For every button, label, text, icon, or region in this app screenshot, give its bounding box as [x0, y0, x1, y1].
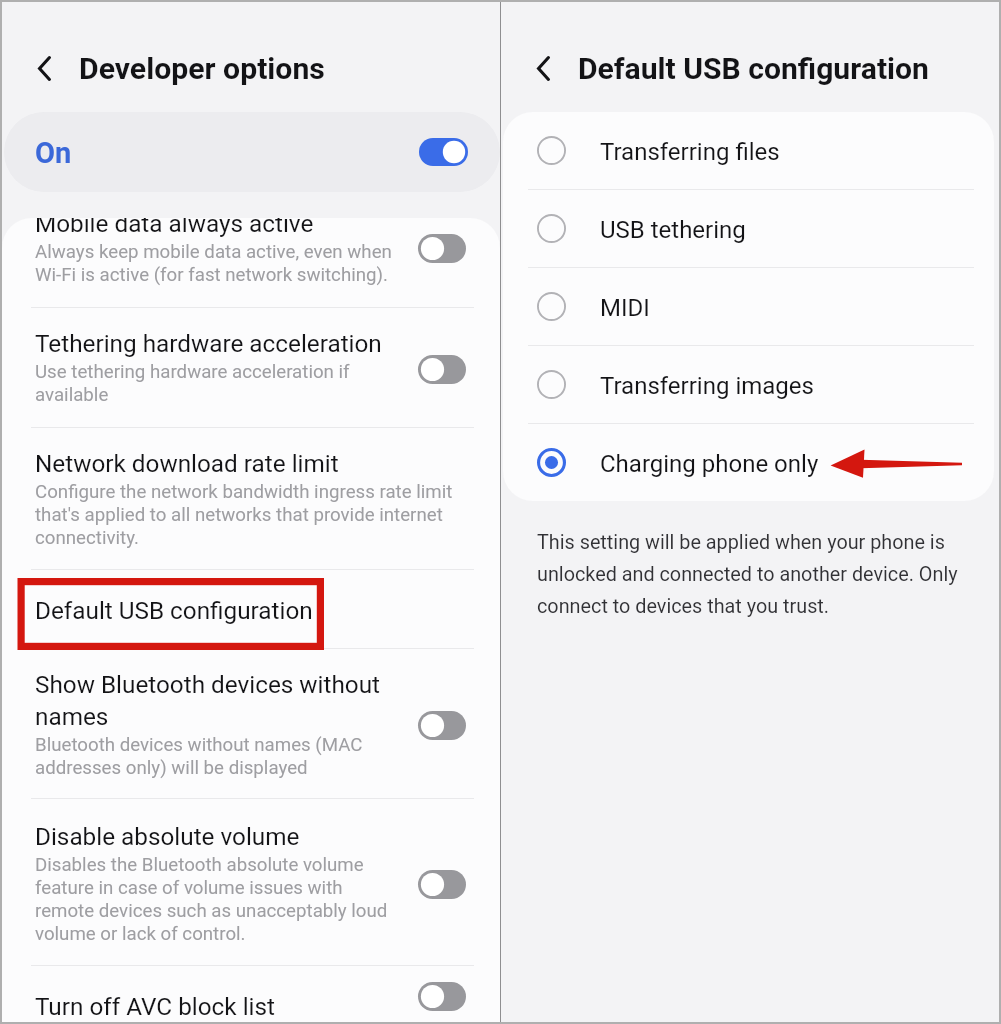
staticText: USB tethering	[600, 213, 746, 244]
staticText: Transferring images	[600, 369, 814, 400]
staticText: Developer options	[79, 48, 325, 87]
button[interactable]: Default USB configuration	[2, 570, 500, 648]
button[interactable]: Back	[2, 2, 500, 112]
staticText: Mobile data always active	[35, 218, 314, 239]
other: Back	[537, 56, 550, 81]
staticText: Default USB configuration	[578, 48, 929, 87]
staticText: Turn off AVC block list	[35, 990, 275, 1022]
button[interactable]: On	[4, 112, 500, 192]
button[interactable]: Charging phone only	[503, 424, 994, 501]
staticText: Use tethering hardware acceleration if a…	[35, 360, 400, 406]
button[interactable]: Show Bluetooth devices without names	[2, 649, 500, 798]
button[interactable]: MIDI	[503, 268, 994, 345]
staticText: Network download rate limit	[35, 447, 339, 479]
button[interactable]: Disable absolute volume	[2, 799, 500, 965]
staticText: Bluetooth devices without names (MAC add…	[35, 733, 400, 779]
other: Back	[38, 56, 51, 81]
staticText: On	[35, 133, 72, 171]
staticText: Configure the network bandwidth ingress …	[35, 480, 460, 549]
staticText: Charging phone only	[600, 447, 819, 478]
button[interactable]: Tethering hardware acceleration	[2, 308, 500, 427]
staticText: Show Bluetooth devices without names	[35, 668, 400, 732]
staticText: Always keep mobile data active, even whe…	[35, 240, 400, 286]
button[interactable]: Transferring files	[503, 112, 994, 189]
staticText: Disable absolute volume	[35, 820, 300, 852]
button[interactable]: USB tethering	[503, 190, 994, 267]
staticText: Default USB configuration	[35, 594, 313, 626]
staticText: This setting will be applied when your p…	[537, 524, 982, 620]
button[interactable]: Back	[501, 2, 999, 112]
staticText: Disables the Bluetooth absolute volume f…	[35, 853, 400, 945]
button[interactable]: Turn off AVC block list	[2, 966, 500, 1022]
button[interactable]: Transferring images	[503, 346, 994, 423]
staticText: Tethering hardware acceleration	[35, 327, 382, 359]
button[interactable]: Mobile data always active	[2, 218, 500, 307]
staticText: Transferring files	[600, 135, 780, 166]
staticText: MIDI	[600, 291, 650, 322]
button[interactable]: Network download rate limit	[2, 428, 500, 569]
